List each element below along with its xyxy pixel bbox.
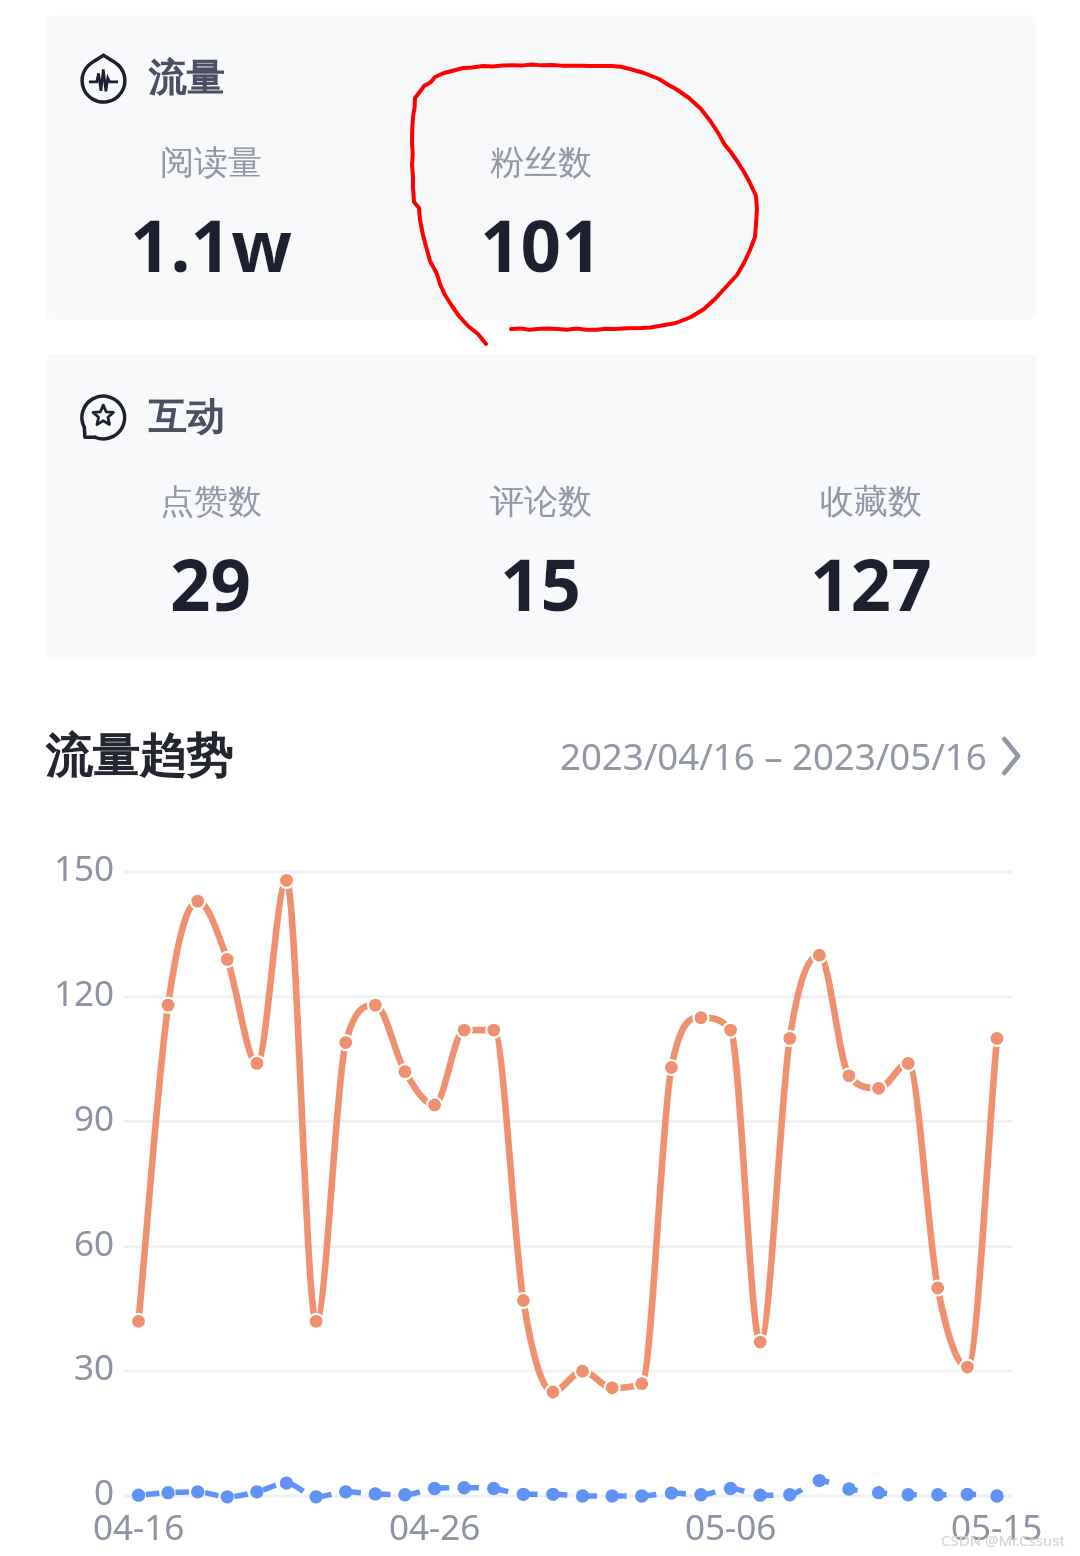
staticText: 90 xyxy=(74,1094,115,1142)
staticText: 阅读量 xyxy=(160,141,262,184)
staticText: 29 xyxy=(170,535,252,632)
staticText: 15 xyxy=(500,535,582,632)
staticText: 1.1w xyxy=(130,196,292,293)
staticText: 05-15 xyxy=(951,1503,1043,1551)
staticText: 流量趋势 xyxy=(45,727,233,786)
button[interactable]: Traffic trend chart xyxy=(0,830,1080,1556)
staticText: 收藏数 xyxy=(820,480,922,523)
staticText: 127 xyxy=(810,535,932,632)
staticText: 04-16 xyxy=(93,1503,185,1551)
staticText: 互动 xyxy=(148,393,224,441)
staticText: 101 xyxy=(480,196,602,293)
button[interactable]: 流量 xyxy=(46,15,1036,320)
staticText: 05-06 xyxy=(685,1503,777,1551)
staticText: 评论数 xyxy=(490,480,592,523)
staticText: 04-26 xyxy=(389,1503,481,1551)
staticText: 150 xyxy=(54,844,115,892)
staticText: 流量 xyxy=(148,54,224,102)
button[interactable]: 互动 xyxy=(46,354,1036,659)
staticText: 60 xyxy=(74,1219,115,1267)
staticText: 点赞数 xyxy=(160,480,262,523)
other: Highlight annotation xyxy=(0,0,1080,1556)
button[interactable]: 流量趋势 xyxy=(45,718,1023,794)
staticText: CSDN @Mr.Cssust xyxy=(941,1530,1065,1550)
staticText: 0 xyxy=(94,1468,115,1516)
staticText: 粉丝数 xyxy=(490,141,592,184)
staticText: 2023/04/16 – 2023/05/16 xyxy=(560,731,987,781)
staticText: 30 xyxy=(74,1343,115,1391)
staticText: 120 xyxy=(54,969,115,1017)
